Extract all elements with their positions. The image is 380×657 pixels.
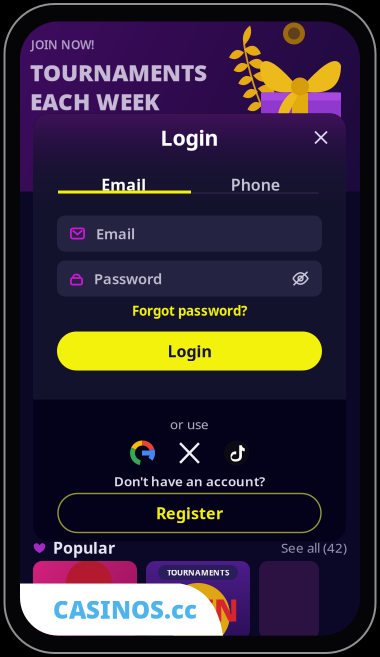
button[interactable]: Sign in with TikTok <box>224 440 249 465</box>
button[interactable]: Email <box>58 171 189 197</box>
staticText: EACH WEEK <box>30 86 160 116</box>
staticText: TOURNAMENTS <box>30 57 207 87</box>
button[interactable]: COIN <box>146 561 250 639</box>
staticText: See all (42) <box>281 539 347 556</box>
staticText: Register <box>156 502 223 524</box>
staticText: COIN <box>160 590 238 629</box>
staticText: Phone <box>231 174 280 195</box>
staticText: CASINOS.cc <box>53 594 197 625</box>
staticText: JOIN NOW! <box>31 36 94 52</box>
button[interactable]: Login <box>57 331 322 370</box>
staticText: Don't have an account? <box>114 472 265 490</box>
button[interactable] <box>33 561 137 639</box>
staticText: Forgot password? <box>132 302 247 319</box>
button[interactable]: Sign in with Google <box>130 440 155 465</box>
staticText: TOURNAMENTS <box>167 567 229 578</box>
button[interactable]: Phone <box>189 171 321 197</box>
button[interactable]: Forgot password? <box>33 302 346 318</box>
staticText: Login <box>167 340 211 362</box>
staticText: or use <box>170 415 209 433</box>
staticText: Email <box>101 174 146 195</box>
button[interactable]: Sign in with X <box>179 442 200 463</box>
button[interactable]: Show password <box>292 271 309 285</box>
button[interactable]: See all (42) <box>281 539 347 556</box>
staticText: Popular <box>53 537 115 558</box>
staticText: Password <box>94 269 162 288</box>
button[interactable]: Close <box>310 126 332 148</box>
button[interactable]: Register <box>58 493 321 532</box>
staticText: Login <box>160 123 218 152</box>
staticText: Email <box>96 224 135 243</box>
